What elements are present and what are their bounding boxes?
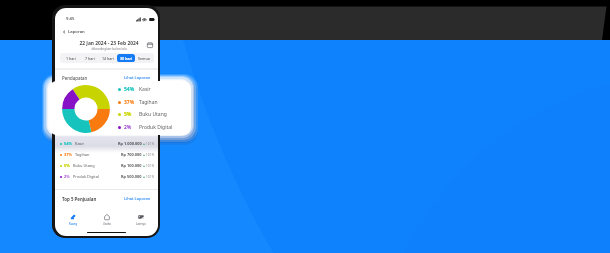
button[interactable]: 30 hari [117,54,135,62]
staticText: Rp 700.000 [121,152,142,157]
staticText: Usaha [103,222,111,226]
staticText: 10.1% [146,142,155,146]
staticText: Buku Utang [73,163,95,168]
staticText: Produk Digital [139,124,173,131]
staticText: Kasir [75,141,85,146]
staticText: Kasir [139,86,151,93]
staticText: 10.1% [146,164,155,168]
staticText: Lihat Laporan [124,75,151,80]
button[interactable]: 14 hari [99,54,117,62]
button[interactable]: Semua [135,54,153,62]
staticText: Pendapatan [62,75,88,81]
staticText: Tagihan [75,152,90,157]
staticText: Laporan [68,29,85,35]
staticText: 5% [124,111,132,118]
staticText: Rp 500.000 [121,174,142,179]
staticText: Top 5 Penjualan [62,196,97,202]
staticText: Lainnya [136,222,146,226]
staticText: Semua [138,56,150,61]
staticText: Rp 1.000.000 [118,141,142,146]
staticText: 5% [64,163,70,168]
staticText: 2% [124,124,132,131]
staticText: Ruang [69,222,77,226]
staticText: 10.1% [146,153,155,157]
button[interactable]: Lainnya [124,210,158,229]
staticText: 7 hari [85,56,95,61]
staticText: 10.1% [146,175,155,179]
staticText: 54% [64,141,72,146]
button[interactable]: 54% [60,138,155,149]
button[interactable]: Pick date range [147,42,153,48]
button[interactable]: 37% [60,149,155,160]
button[interactable]: 1 hari [61,54,80,62]
staticText: 30 hari [120,56,133,61]
button[interactable]: Usaha [90,210,124,229]
button[interactable]: 5% [60,160,155,171]
staticText: Produk Digital [73,174,99,179]
staticText: Buku Utang [139,111,167,118]
button[interactable]: Lihat Laporan [124,75,151,80]
staticText: Rp 100.000 [121,163,142,168]
staticText: dibandingkan bulan lalu [91,47,127,51]
staticText: 1 hari [66,56,76,61]
staticText: 2% [64,174,70,179]
button[interactable]: 2% [60,171,155,182]
staticText: 37% [64,152,72,157]
button[interactable]: Ruang [55,210,90,229]
staticText: 37% [124,99,135,106]
button[interactable]: Back [62,27,158,37]
staticText: 9:45 [66,16,75,22]
staticText: 22 Jan 2024 - 23 Feb 2024 [79,40,139,47]
staticText: Lihat Laporan [124,196,151,201]
button[interactable]: Lihat Laporan [124,196,151,201]
button[interactable]: 7 hari [80,54,99,62]
staticText: 14 hari [102,56,114,61]
staticText: 54% [124,86,135,93]
staticText: Tagihan [139,99,158,106]
